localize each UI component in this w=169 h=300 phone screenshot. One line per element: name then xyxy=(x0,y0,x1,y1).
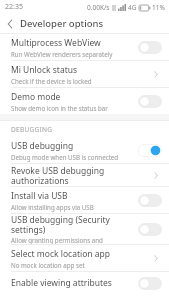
other: Open xyxy=(150,67,162,81)
button[interactable]: Demo mode xyxy=(0,88,169,114)
staticText: Install via USB xyxy=(11,190,68,202)
button[interactable]: Off xyxy=(138,194,162,207)
button[interactable]: Off xyxy=(138,223,162,236)
staticText: 11% xyxy=(152,3,165,12)
button[interactable]: Off xyxy=(138,41,162,54)
button[interactable]: USB debugging xyxy=(0,137,169,163)
button[interactable]: Off xyxy=(138,95,162,108)
staticText: Select mock location app xyxy=(11,248,111,260)
staticText: Debug mode when USB is connected xyxy=(11,153,119,161)
button[interactable]: Off xyxy=(138,277,162,290)
staticText: Enable viewing attributes xyxy=(11,277,112,289)
staticText: Run WebView renderers separately xyxy=(11,50,113,58)
button[interactable]: Enable viewing attributes xyxy=(0,272,169,294)
button[interactable]: Install via USB xyxy=(0,187,169,213)
button[interactable]: On xyxy=(138,144,162,157)
staticText: 4G xyxy=(128,3,137,12)
staticText: Developer options xyxy=(20,17,104,30)
other: Open xyxy=(150,251,162,265)
staticText: No mock location app set xyxy=(11,261,85,269)
staticText: Allow granting permissions and simulatin… xyxy=(11,236,134,244)
staticText: Show demo icon in the status bar xyxy=(11,104,108,112)
button[interactable]: Mi Unlock status xyxy=(0,61,169,87)
staticText: USB debugging xyxy=(11,140,74,152)
staticText: Mi Unlock status xyxy=(11,64,78,76)
staticText: Check if the device is locked xyxy=(11,77,92,85)
staticText: DEBUGGING xyxy=(11,125,53,134)
button[interactable]: Select mock location app xyxy=(0,245,169,271)
button[interactable]: USB debugging (Security settings) xyxy=(0,214,169,244)
button[interactable]: Back xyxy=(0,14,20,33)
staticText: Demo mode xyxy=(11,91,61,103)
staticText: Multiprocess WebView xyxy=(11,37,101,49)
button[interactable]: Multiprocess WebView xyxy=(0,34,169,60)
staticText: 0.00K/s xyxy=(87,3,110,12)
staticText: Revoke USB debugging authorizations xyxy=(11,165,146,186)
button[interactable]: Revoke USB debugging authorizations xyxy=(0,164,169,186)
other: Open xyxy=(150,168,162,182)
staticText: Allow installing apps via USB xyxy=(11,203,94,211)
staticText: USB debugging (Security settings) xyxy=(11,214,134,235)
staticText: 22:35 xyxy=(5,2,23,12)
